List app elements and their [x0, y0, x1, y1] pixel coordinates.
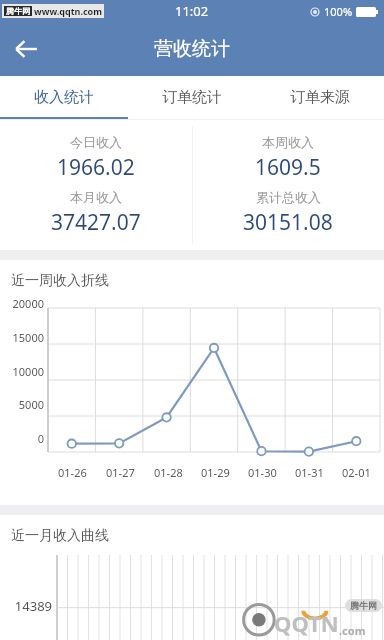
- staticText: 本月收入: [70, 189, 122, 205]
- staticText: 11:02: [175, 2, 209, 20]
- staticText: 累计总收入: [256, 189, 321, 205]
- staticText: QQTN: [274, 608, 339, 638]
- staticText: 02-01: [342, 465, 371, 480]
- staticText: 15000: [0, 330, 44, 345]
- staticText: 近一周收入折线: [11, 272, 109, 290]
- staticText: 订单统计: [162, 88, 222, 107]
- staticText: 腾牛网: [350, 600, 377, 611]
- staticText: 01-30: [248, 465, 277, 480]
- staticText: 20000: [0, 296, 44, 311]
- button[interactable]: Back: [0, 23, 52, 75]
- staticText: 0: [0, 431, 44, 446]
- staticText: 近一月收入曲线: [11, 527, 109, 545]
- staticText: www.qqtn.com: [34, 5, 102, 17]
- staticText: 30151.08: [243, 208, 333, 237]
- staticText: 100%: [324, 4, 353, 19]
- staticText: 01-28: [154, 465, 183, 480]
- staticText: 10000: [0, 364, 44, 379]
- staticText: 订单来源: [290, 88, 350, 107]
- staticText: 营收统计: [154, 37, 230, 61]
- staticText: 01-27: [106, 465, 135, 480]
- button[interactable]: 订单来源: [256, 76, 384, 119]
- staticText: 37427.07: [51, 208, 141, 237]
- staticText: 1609.5: [255, 153, 321, 182]
- staticText: 收入统计: [34, 88, 94, 107]
- button[interactable]: 订单统计: [128, 76, 256, 119]
- staticText: 01-26: [58, 465, 87, 480]
- staticText: 01-29: [201, 465, 230, 480]
- staticText: 腾牛网: [6, 6, 30, 16]
- staticText: 1966.02: [57, 153, 135, 182]
- staticText: 01-31: [295, 465, 324, 480]
- button[interactable]: 收入统计: [0, 76, 128, 119]
- staticText: .com: [339, 623, 366, 638]
- staticText: 5000: [0, 397, 44, 412]
- staticText: 今日收入: [70, 134, 122, 150]
- staticText: 本周收入: [262, 134, 314, 150]
- staticText: 14389: [0, 597, 52, 615]
